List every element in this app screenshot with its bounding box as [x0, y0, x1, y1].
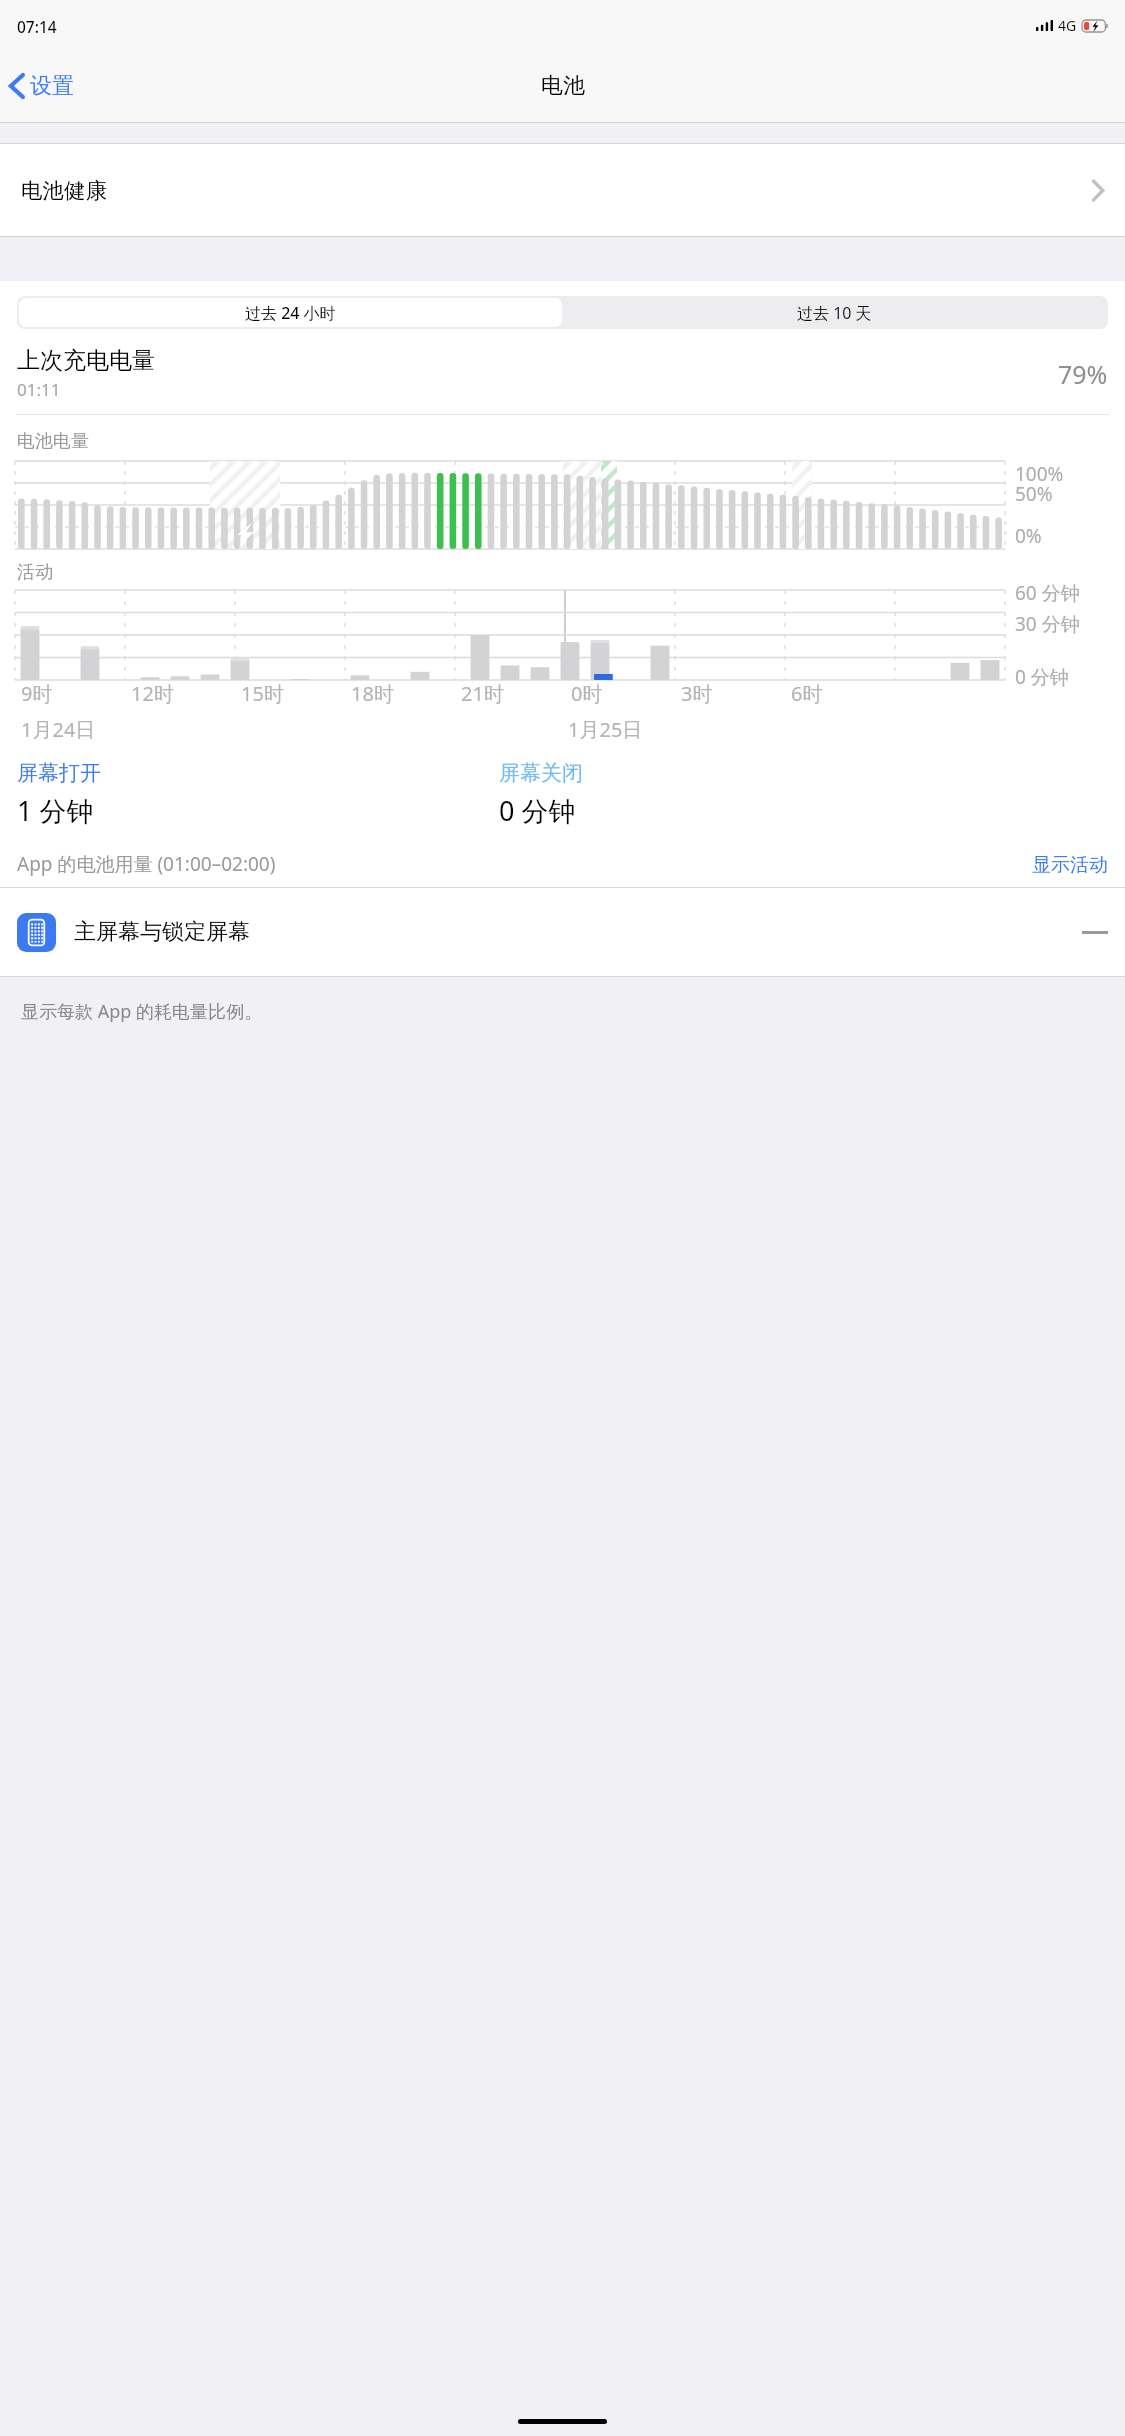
staticText: 1 分钟	[17, 792, 94, 829]
staticText: 显示活动	[1032, 853, 1108, 877]
staticText: 1月25日	[568, 716, 643, 743]
staticText: 12时	[131, 680, 174, 707]
staticText: 0时	[571, 680, 603, 707]
staticText: App 的电池用量 (01:00–02:00)	[17, 851, 276, 877]
staticText: 0 分钟	[1015, 664, 1069, 690]
button[interactable]: 电池健康	[0, 144, 1125, 236]
staticText: 过去 24 小时	[245, 302, 336, 324]
staticText: 电池	[541, 72, 585, 100]
staticText: 活动	[17, 561, 53, 584]
staticText: 电池电量	[17, 430, 89, 453]
staticText: 21时	[461, 680, 504, 707]
button[interactable]: 过去 24 小时	[19, 298, 562, 327]
staticText: 0%	[1015, 523, 1042, 549]
staticText: 屏幕关闭	[499, 760, 583, 786]
button[interactable]: 设置	[0, 64, 86, 108]
button[interactable]: 显示活动	[1032, 853, 1108, 877]
staticText: 设置	[30, 72, 74, 100]
staticText: 79%	[1058, 357, 1108, 391]
staticText: 60 分钟	[1015, 580, 1080, 606]
staticText: 9时	[21, 680, 53, 707]
staticText: 15时	[241, 680, 284, 707]
staticText: 4G	[1058, 16, 1077, 35]
staticText: 屏幕打开	[17, 760, 101, 786]
staticText: 18时	[351, 680, 394, 707]
staticText: 100%	[1015, 461, 1064, 487]
staticText: 3时	[681, 680, 713, 707]
staticText: 电池健康	[21, 177, 107, 204]
staticText: 6时	[791, 680, 823, 707]
staticText: 主屏幕与锁定屏幕	[74, 918, 250, 946]
staticText: 1月24日	[21, 716, 96, 743]
button[interactable]: 主屏幕与锁定屏幕	[0, 888, 1125, 976]
button[interactable]: 过去 10 天	[562, 298, 1106, 327]
staticText: 07:14	[17, 16, 57, 37]
staticText: 显示每款 App 的耗电量比例。	[21, 999, 263, 1024]
staticText: 上次充电电量	[17, 346, 155, 375]
staticText: 01:11	[17, 378, 61, 401]
staticText: 0 分钟	[499, 792, 576, 829]
staticText: 30 分钟	[1015, 611, 1080, 637]
staticText: 50%	[1015, 481, 1053, 507]
staticText: 过去 10 天	[797, 302, 872, 324]
